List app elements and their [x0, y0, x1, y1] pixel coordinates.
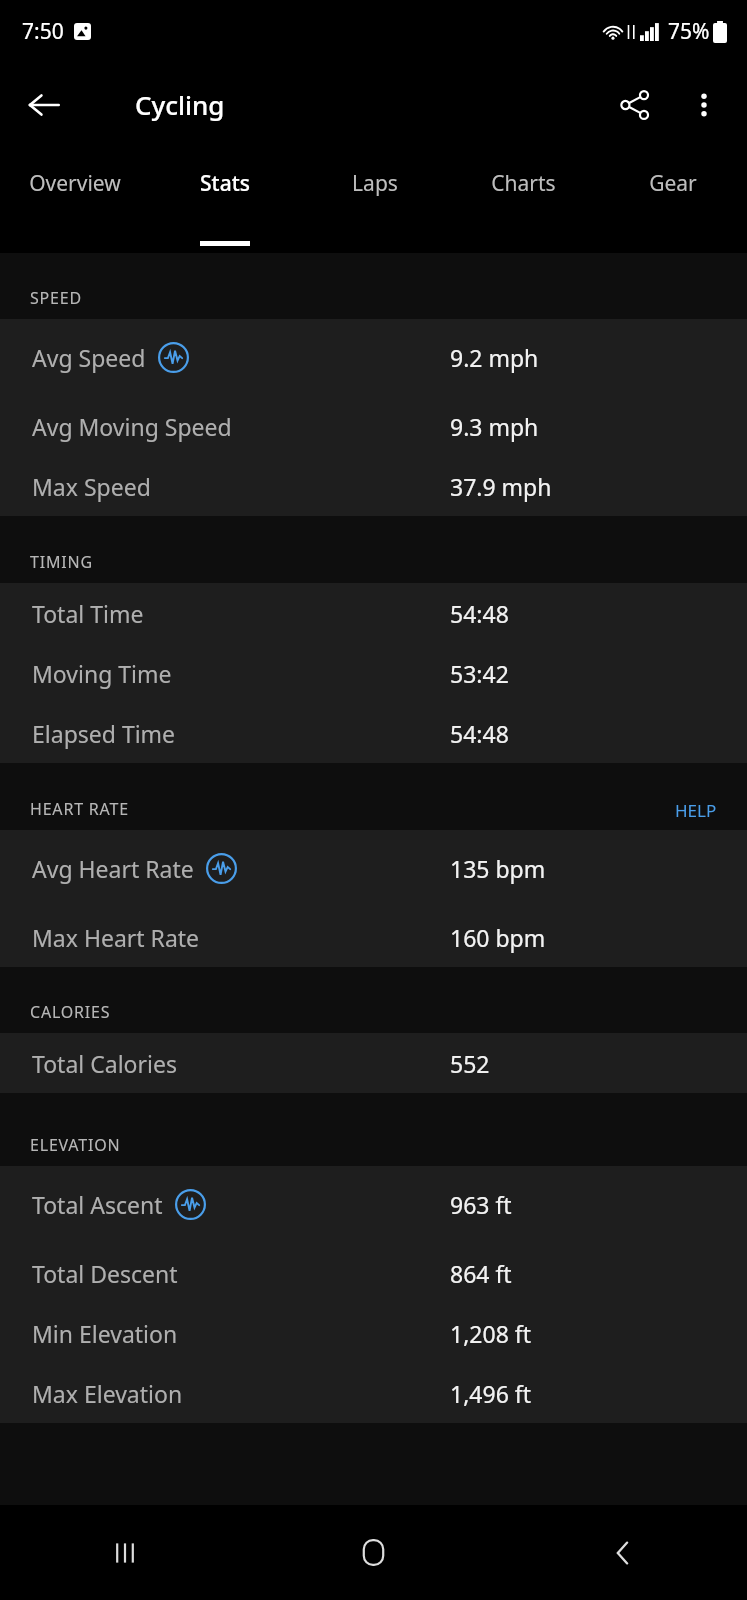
- staticText: 54:48: [450, 718, 509, 749]
- button[interactable]: Max Heart Rate: [0, 907, 747, 967]
- staticText: 1,496 ft: [450, 1378, 531, 1409]
- staticText: 552: [450, 1048, 490, 1079]
- staticText: Cycling: [135, 87, 225, 122]
- staticText: Total Descent: [32, 1258, 178, 1289]
- button[interactable]: Back: [8, 69, 80, 141]
- staticText: Avg Moving Speed: [32, 411, 232, 442]
- staticText: 75%: [668, 17, 710, 46]
- staticText: Total Ascent: [32, 1189, 163, 1220]
- button[interactable]: Total Descent: [0, 1243, 747, 1303]
- button[interactable]: HELP: [663, 795, 729, 826]
- staticText: Overview: [29, 169, 121, 198]
- staticText: Elapsed Time: [32, 718, 176, 749]
- button[interactable]: Max Speed: [0, 456, 747, 516]
- staticText: Laps: [352, 169, 398, 198]
- staticText: 9.2 mph: [450, 342, 539, 373]
- staticText: 9.3 mph: [450, 411, 539, 442]
- staticText: Max Speed: [32, 471, 151, 502]
- staticText: 53:42: [450, 658, 509, 689]
- staticText: CALORIES: [30, 1001, 111, 1023]
- button[interactable]: Avg Speed: [0, 319, 747, 396]
- button[interactable]: Laps: [300, 147, 449, 253]
- button[interactable]: Stats: [150, 147, 300, 253]
- button[interactable]: Home: [249, 1505, 498, 1600]
- button[interactable]: Max Elevation: [0, 1363, 747, 1423]
- button[interactable]: Min Elevation: [0, 1303, 747, 1363]
- staticText: Max Heart Rate: [32, 922, 200, 953]
- staticText: 864 ft: [450, 1258, 512, 1289]
- staticText: 160 bpm: [450, 922, 546, 953]
- staticText: 963 ft: [450, 1189, 512, 1220]
- staticText: Avg Heart Rate: [32, 853, 194, 884]
- staticText: 7:50: [22, 17, 64, 46]
- button[interactable]: More options: [671, 72, 737, 138]
- button[interactable]: Moving Time: [0, 643, 747, 703]
- staticText: 37.9 mph: [450, 471, 552, 502]
- staticText: Charts: [491, 169, 556, 198]
- button[interactable]: Total Ascent: [0, 1166, 747, 1243]
- button[interactable]: Gear: [598, 147, 747, 253]
- button[interactable]: Elapsed Time: [0, 703, 747, 763]
- staticText: Total Calories: [32, 1048, 177, 1079]
- staticText: ELEVATION: [30, 1134, 121, 1156]
- button[interactable]: Charts: [449, 147, 598, 253]
- staticText: SPEED: [30, 287, 82, 309]
- staticText: 1,208 ft: [450, 1318, 531, 1349]
- button[interactable]: Total Time: [0, 583, 747, 643]
- staticText: Min Elevation: [32, 1318, 178, 1349]
- staticText: Moving Time: [32, 658, 172, 689]
- button[interactable]: Overview: [0, 147, 150, 253]
- staticText: Total Time: [32, 598, 144, 629]
- staticText: Max Elevation: [32, 1378, 183, 1409]
- staticText: Stats: [200, 169, 250, 198]
- button[interactable]: Avg Heart Rate: [0, 830, 747, 907]
- staticText: 54:48: [450, 598, 509, 629]
- button[interactable]: Recents: [0, 1505, 249, 1600]
- staticText: 135 bpm: [450, 853, 546, 884]
- staticText: Avg Speed: [32, 342, 146, 373]
- staticText: Gear: [649, 169, 697, 198]
- button[interactable]: Total Calories: [0, 1033, 747, 1093]
- button[interactable]: Back: [498, 1505, 747, 1600]
- staticText: TIMING: [30, 551, 93, 573]
- staticText: HELP: [675, 799, 717, 822]
- staticText: HEART RATE: [30, 798, 129, 820]
- button[interactable]: Avg Moving Speed: [0, 396, 747, 456]
- button[interactable]: Share: [599, 69, 671, 141]
